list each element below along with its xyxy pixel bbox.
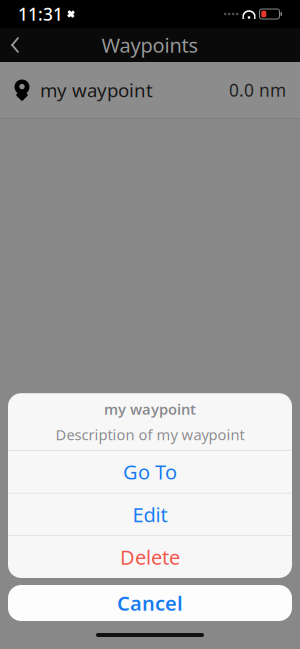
staticText: Cancel xyxy=(117,590,183,616)
button[interactable]: Cancel xyxy=(8,585,292,621)
button[interactable]: Edit xyxy=(8,493,292,535)
button[interactable]: my waypoint xyxy=(0,62,300,119)
staticText: my waypoint xyxy=(104,399,196,419)
staticText: 0.0 nm xyxy=(229,78,286,101)
staticText: Edit xyxy=(132,501,167,528)
button[interactable]: Delete xyxy=(8,536,292,578)
staticText: 11:31 xyxy=(18,2,63,25)
staticText: Delete xyxy=(120,544,180,570)
button[interactable]: Go To xyxy=(8,451,292,493)
staticText: Waypoints xyxy=(101,32,198,58)
staticText: my waypoint xyxy=(40,78,153,102)
button[interactable]: Back xyxy=(0,28,44,62)
staticText: Description of my waypoint xyxy=(55,425,244,444)
staticText: Go To xyxy=(123,458,177,485)
